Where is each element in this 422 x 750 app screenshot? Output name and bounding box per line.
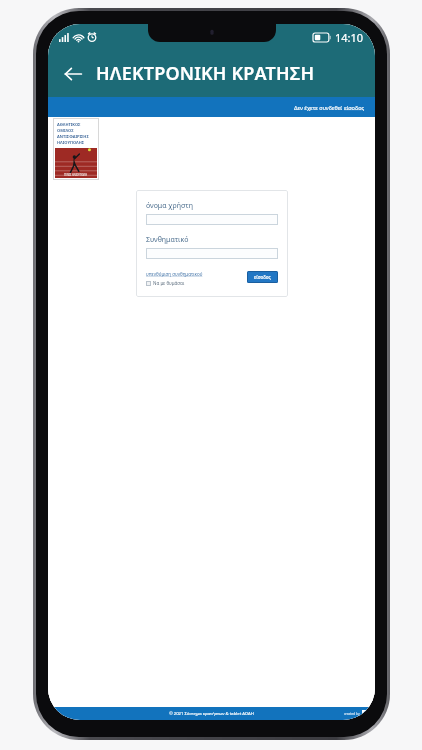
staticText: είσοδος [344, 104, 365, 111]
staticText: Δεν έχετε συνδεθεί [294, 104, 344, 111]
staticText: όνομα χρήστη [146, 201, 193, 211]
button[interactable]: είσοδος [344, 104, 365, 111]
staticText: ΟΜΙΛΟΣ [57, 128, 74, 133]
staticText: ΗΛΕΚΤΡΟΝΙΚΗ ΚΡΑΤΗΣΗ [96, 61, 315, 86]
staticText: ΑΘΛΗΤΙΚΟΣ [57, 122, 81, 127]
staticText: είσοδος [254, 274, 271, 280]
button[interactable]: Δημιουργός [362, 710, 370, 718]
staticText: © 2021 Σύστημα κρατήσεων & tablet ΑΟΑΗ [169, 711, 254, 717]
staticText: Συνθηματικό [146, 235, 189, 245]
button[interactable]: είσοδος [247, 271, 278, 283]
staticText: Να με θυμάσαι [153, 280, 185, 286]
staticText: ΗΛΙΟΥΠΟΛΗΣ [57, 140, 85, 145]
button[interactable]: Να με θυμάσαι [146, 280, 185, 286]
button[interactable]: υπενθύμιση συνθηματικού [146, 271, 203, 277]
staticText: υπενθύμιση συνθηματικού [146, 271, 203, 277]
staticText: created by [344, 712, 360, 716]
staticText: 14:10 [335, 30, 364, 45]
button[interactable]: Λογότυπο συλλόγου [53, 118, 99, 180]
button[interactable] [146, 248, 278, 259]
staticText: ΑΝΤΙΣΦΑΙΡΙΣΗΣ [57, 134, 89, 139]
staticText: ΤΕΝΙΣ ΗΛΙΟΥΠΟΛΗ [64, 173, 88, 177]
button[interactable] [146, 214, 278, 225]
button[interactable]: Πίσω [54, 55, 92, 93]
